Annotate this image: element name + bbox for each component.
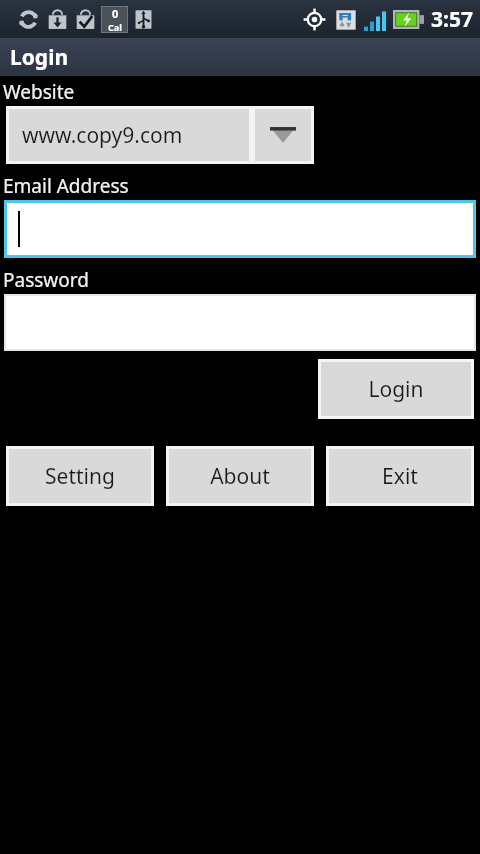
staticText: Password [3,267,89,293]
button[interactable]: Exit [329,449,471,503]
button[interactable]: Website selector [6,106,314,164]
button[interactable]: Login [321,362,471,416]
staticText: About [210,462,270,491]
staticText: 0 [112,6,119,21]
button[interactable]: Email Address input [7,203,473,255]
staticText: Website [3,79,75,105]
staticText: Email Address [3,173,129,199]
staticText: 3:57 [431,5,473,34]
staticText: www.copy9.com [22,121,183,150]
button[interactable]: About [169,449,311,503]
staticText: Exit [382,462,418,491]
button[interactable]: Setting [9,449,151,503]
staticText: Login [10,43,69,72]
staticText: Cal [108,21,122,33]
staticText: Login [368,375,424,404]
staticText: Setting [45,462,115,491]
